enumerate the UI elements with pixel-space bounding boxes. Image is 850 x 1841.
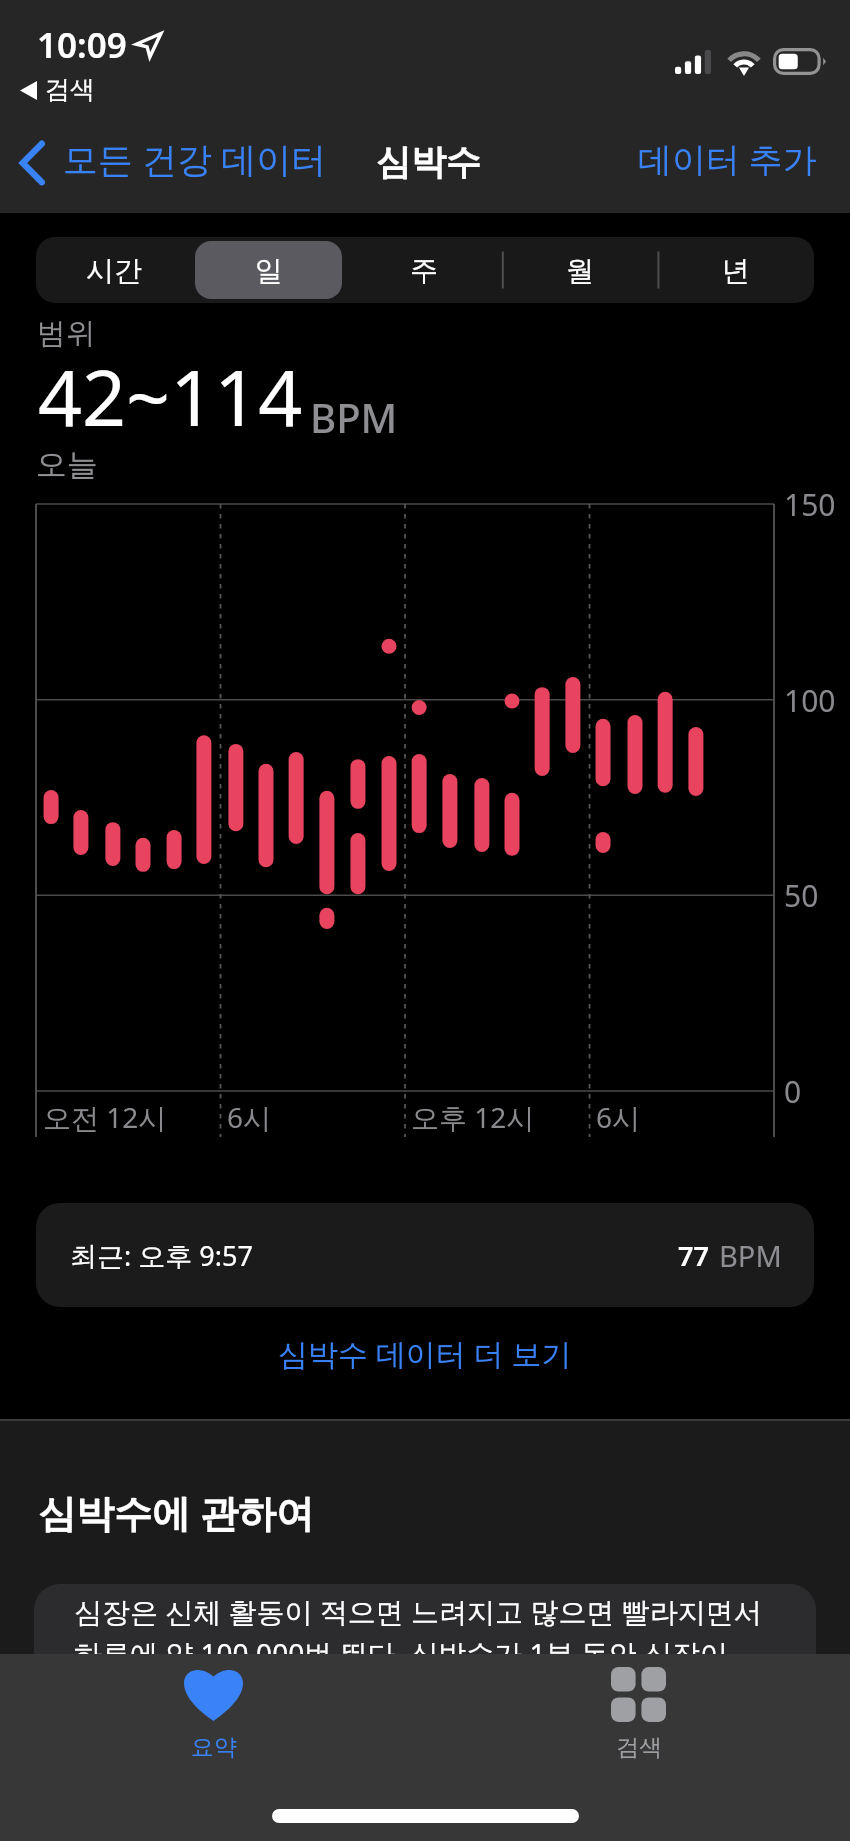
staticText: 월 [566, 253, 594, 288]
button[interactable]: 주 [350, 241, 498, 299]
staticText: 일 [255, 253, 283, 288]
staticText: 오늘 [36, 445, 98, 484]
staticText: 0 [784, 1071, 802, 1112]
staticText: 검색 [616, 1733, 662, 1762]
staticText: 주 [410, 253, 438, 288]
other: Cellular signal [675, 50, 715, 74]
staticText: 150 [784, 484, 836, 525]
button[interactable]: 시간 [40, 241, 187, 299]
staticText: 6시 [227, 1098, 272, 1136]
staticText: 요약 [191, 1733, 237, 1762]
staticText: 모든 건강 데이터 [63, 135, 327, 183]
staticText: 심박수에 관하여 [38, 1486, 314, 1538]
staticText: 오후 12시 [411, 1098, 535, 1136]
staticText: 6시 [596, 1098, 641, 1136]
button[interactable]: 일 [195, 241, 342, 299]
staticText: 최근: 오후 9:57 [70, 1237, 253, 1274]
button[interactable]: 심박수 데이터 더 보기 [0, 1318, 850, 1388]
staticText: 심박수 [376, 140, 481, 184]
staticText: 데이터 추가 [638, 136, 817, 182]
staticText: 시간 [86, 253, 142, 288]
staticText: 범위 [37, 315, 95, 352]
staticText: 심장은 신체 활동이 적으면 느려지고 많으면 빨라지면서 하루에 약 100,… [74, 1592, 794, 1672]
staticText: BPM [719, 1236, 782, 1275]
button[interactable]: 최근: 오후 9:57 [36, 1203, 814, 1307]
staticText: BPM [310, 390, 398, 444]
staticText: 50 [784, 875, 819, 916]
staticText: 100 [784, 680, 836, 721]
staticText: 10:09 [37, 21, 127, 69]
staticText: 77 [678, 1237, 709, 1274]
other: Battery [773, 48, 826, 75]
staticText: 오전 12시 [43, 1098, 167, 1136]
button[interactable]: 데이터 추가 [628, 124, 827, 194]
staticText: 42~114 [38, 344, 303, 449]
button[interactable]: 요약 [88, 1658, 338, 1778]
other: Wi-Fi [727, 50, 761, 74]
staticText: 년 [722, 253, 750, 288]
button[interactable]: 월 [506, 241, 654, 299]
button[interactable]: 검색 [513, 1658, 763, 1778]
button[interactable]: 년 [662, 241, 810, 299]
staticText: 검색 [45, 74, 95, 105]
staticText: 심박수 데이터 더 보기 [278, 1333, 572, 1374]
button[interactable]: 모든 건강 데이터 [0, 124, 339, 194]
